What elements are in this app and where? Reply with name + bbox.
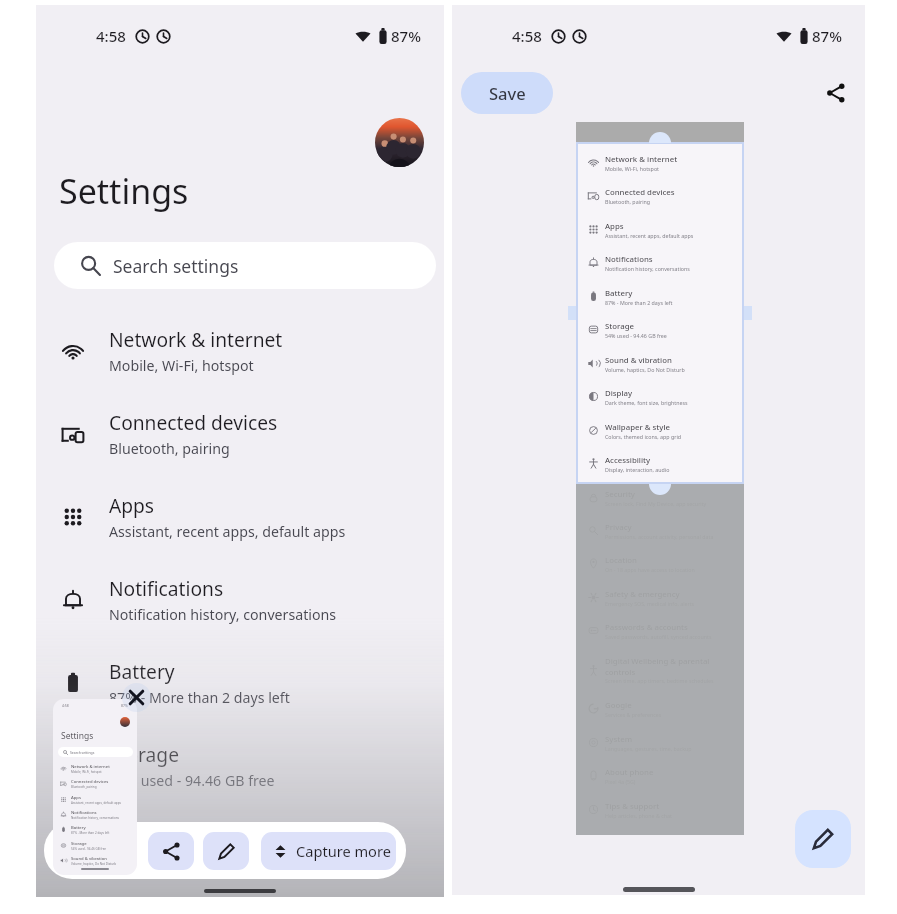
staticText: Save <box>489 82 526 104</box>
staticText: Volume, haptics, Do Not Disturb <box>71 862 117 866</box>
button[interactable]: Adjust bottom of selection <box>649 484 671 495</box>
button[interactable]: Adjust top of selection <box>649 132 671 143</box>
button[interactable]: Share <box>148 832 194 870</box>
staticText: 87% <box>391 26 421 46</box>
staticText: 54% used - 94.46 GB free <box>605 332 667 339</box>
staticText: Bluetooth, pairing <box>109 439 230 458</box>
staticText: Sound & vibration <box>71 856 107 862</box>
staticText: Dark theme, font size, brightness <box>605 399 688 406</box>
staticText: Storage <box>71 841 87 847</box>
staticText: 87% - More than 2 days left <box>71 831 110 835</box>
staticText: Apps <box>109 492 155 518</box>
staticText: 4:58 <box>96 26 126 46</box>
staticText: System <box>605 734 633 745</box>
button[interactable]: Storage <box>36 724 444 807</box>
staticText: Search settings <box>113 254 239 278</box>
staticText: Display <box>605 388 633 399</box>
staticText: Tips & support <box>605 801 660 812</box>
staticText: Connected devices <box>71 779 109 785</box>
button[interactable]: Network & internet <box>36 309 444 392</box>
staticText: Security <box>605 489 635 500</box>
staticText: Mobile, Wi-Fi, hotspot <box>109 356 254 375</box>
staticText: Notifications <box>605 254 653 265</box>
staticText: Volume, haptics, Do Not Disturb <box>605 366 685 373</box>
staticText: Notifications <box>109 575 224 601</box>
staticText: 4:58 <box>512 26 542 46</box>
staticText: 4:58 <box>62 703 69 708</box>
button[interactable]: Notifications <box>36 558 444 641</box>
staticText: Connected devices <box>605 187 675 198</box>
staticText: Bluetooth, pairing <box>605 198 651 205</box>
staticText: Notification history, conversations <box>605 265 690 272</box>
staticText: Bluetooth, pairing <box>71 785 97 789</box>
staticText: 87% - More than 2 days left <box>109 688 290 707</box>
staticText: Assistant, recent apps, default apps <box>605 232 694 239</box>
staticText: 87% - More than 2 days left <box>605 299 673 306</box>
staticText: 87% <box>121 703 128 708</box>
staticText: Storage <box>109 741 179 767</box>
staticText: Connected devices <box>109 409 278 435</box>
staticText: Notification history, conversations <box>71 816 120 820</box>
staticText: About phone <box>605 767 654 778</box>
staticText: Settings <box>59 168 189 214</box>
staticText: Battery <box>109 658 175 684</box>
staticText: Assistant, recent apps, default apps <box>71 801 121 805</box>
staticText: Notification history, conversations <box>109 605 337 624</box>
button[interactable]: Battery <box>36 641 444 724</box>
button[interactable]: Save <box>461 72 553 114</box>
staticText: Network & internet <box>71 764 110 770</box>
staticText: Mobile, Wi-Fi, hotspot <box>605 165 659 172</box>
button[interactable]: Screenshot preview <box>53 699 137 875</box>
button[interactable]: Connected devices <box>36 392 444 475</box>
button[interactable]: Edit <box>203 832 249 870</box>
staticText: Safety & emergency <box>605 589 680 600</box>
button[interactable]: Capture more <box>261 832 396 870</box>
staticText: 87% <box>812 26 842 46</box>
button[interactable]: Account <box>375 118 424 167</box>
staticText: Capture more <box>296 841 391 861</box>
staticText: Network & internet <box>109 326 283 352</box>
button[interactable]: Close <box>122 683 151 712</box>
staticText: Settings <box>61 730 94 742</box>
staticText: Google <box>605 700 632 711</box>
staticText: Search settings <box>70 750 95 755</box>
staticText: Accessibility <box>605 455 651 466</box>
staticText: 54% used - 94.46 GB free <box>71 847 107 851</box>
staticText: Sound & vibration <box>605 355 672 366</box>
button[interactable]: Apps <box>36 475 444 558</box>
staticText: Battery <box>71 825 86 831</box>
staticText: Colors, themed icons, app grid <box>605 433 682 440</box>
staticText: Display, interaction, audio <box>605 466 670 473</box>
staticText: Apps <box>605 221 624 232</box>
button[interactable]: Edit <box>795 810 851 868</box>
staticText: Notifications <box>71 810 97 816</box>
staticText: Assistant, recent apps, default apps <box>109 522 346 541</box>
button[interactable]: Share <box>819 76 853 110</box>
button[interactable]: Search settings <box>54 242 436 289</box>
staticText: Network & internet <box>605 154 678 165</box>
staticText: Battery <box>605 288 633 299</box>
staticText: Apps <box>71 795 81 801</box>
staticText: Mobile, Wi-Fi, hotspot <box>71 770 102 774</box>
staticText: Wallpaper & style <box>605 422 671 433</box>
staticText: 54% used - 94.46 GB free <box>109 771 275 790</box>
staticText: Storage <box>605 321 634 332</box>
